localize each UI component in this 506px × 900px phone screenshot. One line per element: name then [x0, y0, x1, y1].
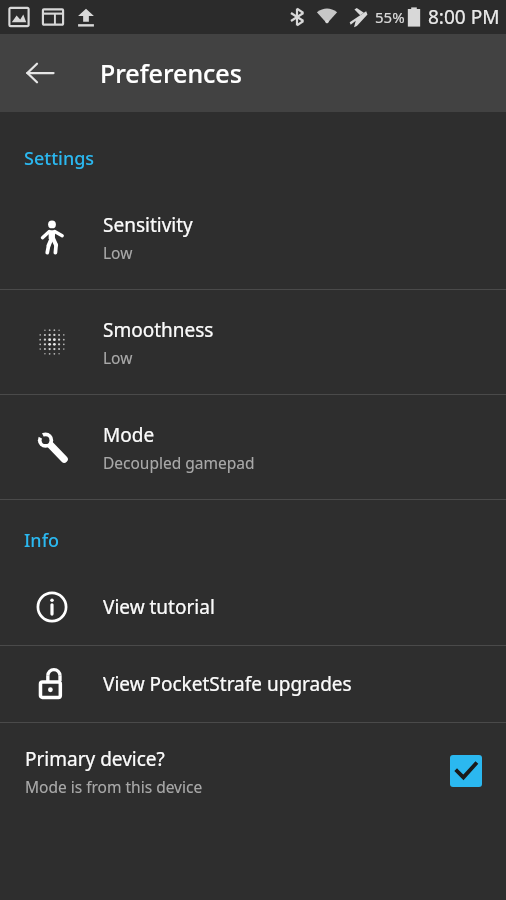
button[interactable]: Primary device? — [0, 723, 506, 819]
button[interactable]: Sensitivity — [0, 185, 506, 289]
staticText: 8:00 PM — [428, 4, 500, 30]
button[interactable]: View tutorial — [0, 569, 506, 645]
button[interactable]: View PocketStrafe upgrades — [0, 646, 506, 722]
staticText: Mode is from this device — [25, 776, 203, 797]
staticText: Low — [103, 347, 133, 368]
staticText: Settings — [24, 146, 95, 171]
staticText: Primary device? — [25, 746, 165, 772]
staticText: Info — [24, 528, 60, 553]
button[interactable]: Back — [14, 47, 66, 99]
button[interactable]: Smoothness — [0, 290, 506, 394]
button[interactable]: Mode — [0, 395, 506, 499]
button[interactable]: Primary device checkbox — [450, 755, 482, 787]
staticText: Decoupled gamepad — [103, 452, 255, 473]
staticText: View tutorial — [103, 594, 215, 620]
staticText: Smoothness — [103, 317, 214, 343]
staticText: View PocketStrafe upgrades — [103, 671, 352, 697]
staticText: Mode — [103, 422, 155, 448]
staticText: Sensitivity — [103, 212, 193, 238]
staticText: Preferences — [100, 56, 242, 90]
staticText: 55% — [375, 7, 405, 27]
staticText: Low — [103, 242, 133, 263]
